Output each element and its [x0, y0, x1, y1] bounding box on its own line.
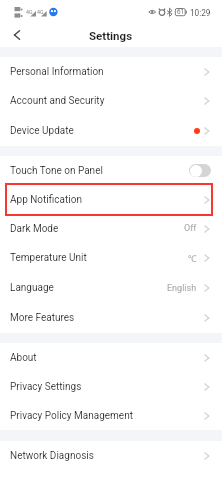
staticText: Settings: [89, 29, 133, 42]
button[interactable]: Privacy Settings: [0, 372, 222, 401]
staticText: Account and Security: [10, 95, 105, 107]
staticText: Privacy Settings: [10, 381, 82, 393]
staticText: Network Diagnosis: [10, 450, 94, 462]
staticText: Language: [10, 282, 54, 294]
button[interactable]: Dark Mode: [0, 214, 222, 243]
staticText: 10:29: [190, 8, 211, 18]
button[interactable]: Personal Information: [0, 57, 222, 86]
button[interactable]: About: [0, 343, 222, 372]
staticText: Temperature Unit: [10, 252, 87, 264]
staticText: English: [167, 283, 197, 294]
staticText: Off: [184, 223, 197, 234]
button[interactable]: Temperature Unit: [0, 243, 222, 273]
button[interactable]: More Features: [0, 303, 222, 333]
button[interactable]: Touch Tone on Panel: [0, 156, 222, 185]
button[interactable]: Language: [0, 273, 222, 303]
staticText: Personal Information: [10, 66, 104, 78]
staticText: More Features: [10, 312, 75, 324]
staticText: 4G: [26, 9, 33, 15]
button[interactable]: Back: [0, 22, 34, 47]
staticText: App Notification: [10, 194, 82, 206]
staticText: 4G: [37, 9, 44, 15]
staticText: Touch Tone on Panel: [10, 165, 103, 177]
staticText: 61: [177, 8, 185, 16]
button[interactable]: Network Diagnosis: [0, 441, 222, 470]
button[interactable]: Account and Security: [0, 86, 222, 116]
staticText: Privacy Policy Management: [10, 410, 133, 422]
staticText: Device Update: [10, 125, 74, 137]
staticText: Dark Mode: [10, 223, 59, 235]
staticText: ℃: [188, 252, 197, 264]
button[interactable]: App Notification: [0, 185, 222, 214]
button[interactable]: Device Update: [0, 116, 222, 146]
staticText: About: [10, 352, 37, 364]
button[interactable]: Privacy Policy Management: [0, 401, 222, 430]
